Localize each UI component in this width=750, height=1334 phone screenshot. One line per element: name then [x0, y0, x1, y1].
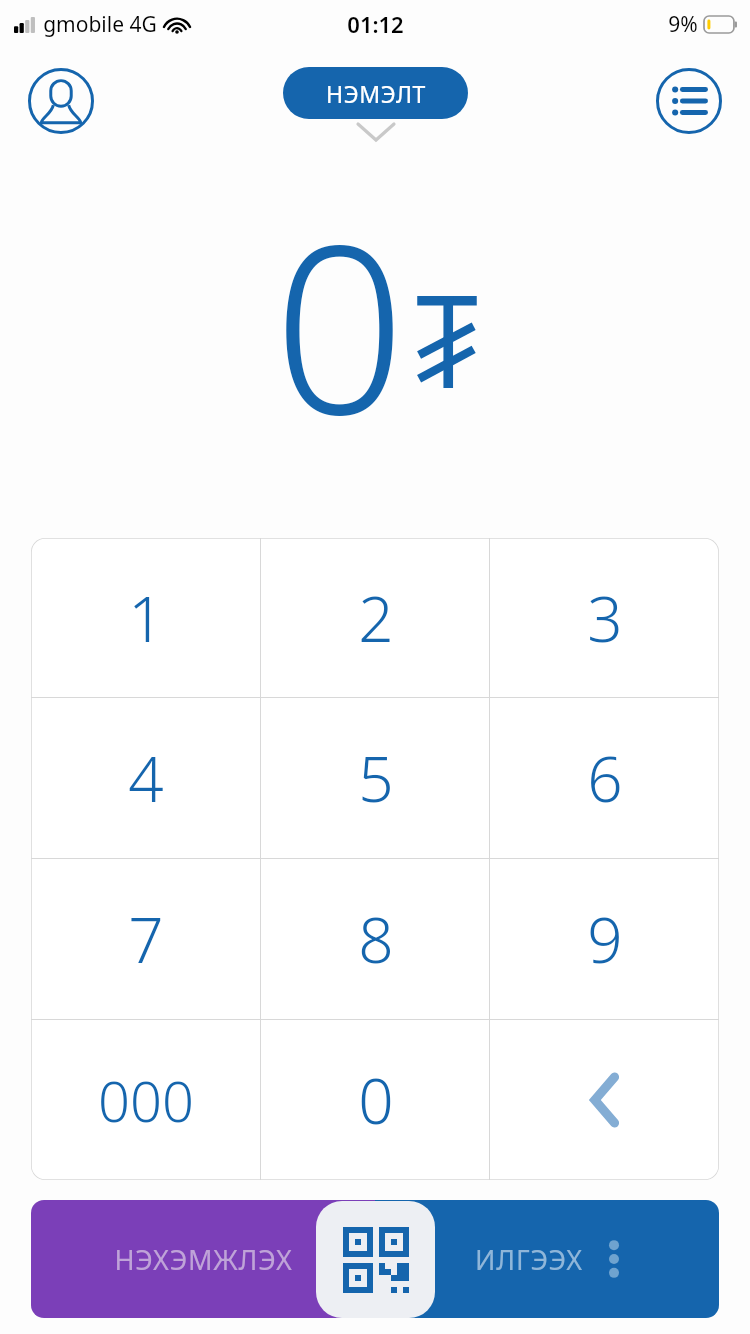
button[interactable]: НЭМЭЛТ [283, 67, 468, 119]
staticText: 8 [358, 897, 394, 981]
other: Backspace [490, 1020, 719, 1180]
staticText: 4 [128, 736, 164, 820]
staticText: 9 [587, 897, 623, 981]
staticText: gmobile 4G [43, 10, 157, 39]
button[interactable]: 4 [31, 698, 261, 858]
staticText: НЭХЭМЖЛЭХ [114, 1241, 293, 1278]
staticText: 5 [358, 736, 394, 820]
button[interactable]: 7 [31, 859, 261, 1019]
button[interactable]: НЭХЭМЖЛЭХ [31, 1200, 375, 1318]
staticText: НЭМЭЛТ [326, 78, 426, 109]
staticText: 0 [273, 166, 406, 482]
other: More options [609, 1238, 619, 1280]
button[interactable]: ИЛГЭЭХ [375, 1200, 719, 1318]
staticText: 000 [98, 1062, 194, 1138]
button[interactable]: 2 [261, 538, 490, 697]
staticText: 1 [128, 576, 164, 660]
staticText: 7 [128, 897, 164, 981]
button[interactable]: 1 [31, 538, 261, 697]
button[interactable]: 3 [490, 538, 719, 697]
button[interactable]: 8 [261, 859, 490, 1019]
button[interactable]: 6 [490, 698, 719, 858]
staticText: 01:12 [347, 9, 404, 39]
button[interactable]: 9 [490, 859, 719, 1019]
staticText: 0 [358, 1058, 394, 1142]
staticText: 9% [668, 10, 698, 39]
button[interactable]: 5 [261, 698, 490, 858]
staticText: 6 [587, 736, 623, 820]
staticText: 3 [587, 576, 623, 660]
button[interactable]: Profile [28, 68, 94, 134]
button[interactable]: Menu [656, 68, 722, 134]
staticText: 2 [358, 576, 394, 660]
staticText: ИЛГЭЭХ [475, 1241, 583, 1278]
button[interactable]: Backspace [490, 1020, 719, 1180]
button[interactable]: 000 [31, 1020, 261, 1180]
button[interactable]: Scan QR code [316, 1201, 435, 1318]
button[interactable]: 0 [261, 1020, 490, 1180]
